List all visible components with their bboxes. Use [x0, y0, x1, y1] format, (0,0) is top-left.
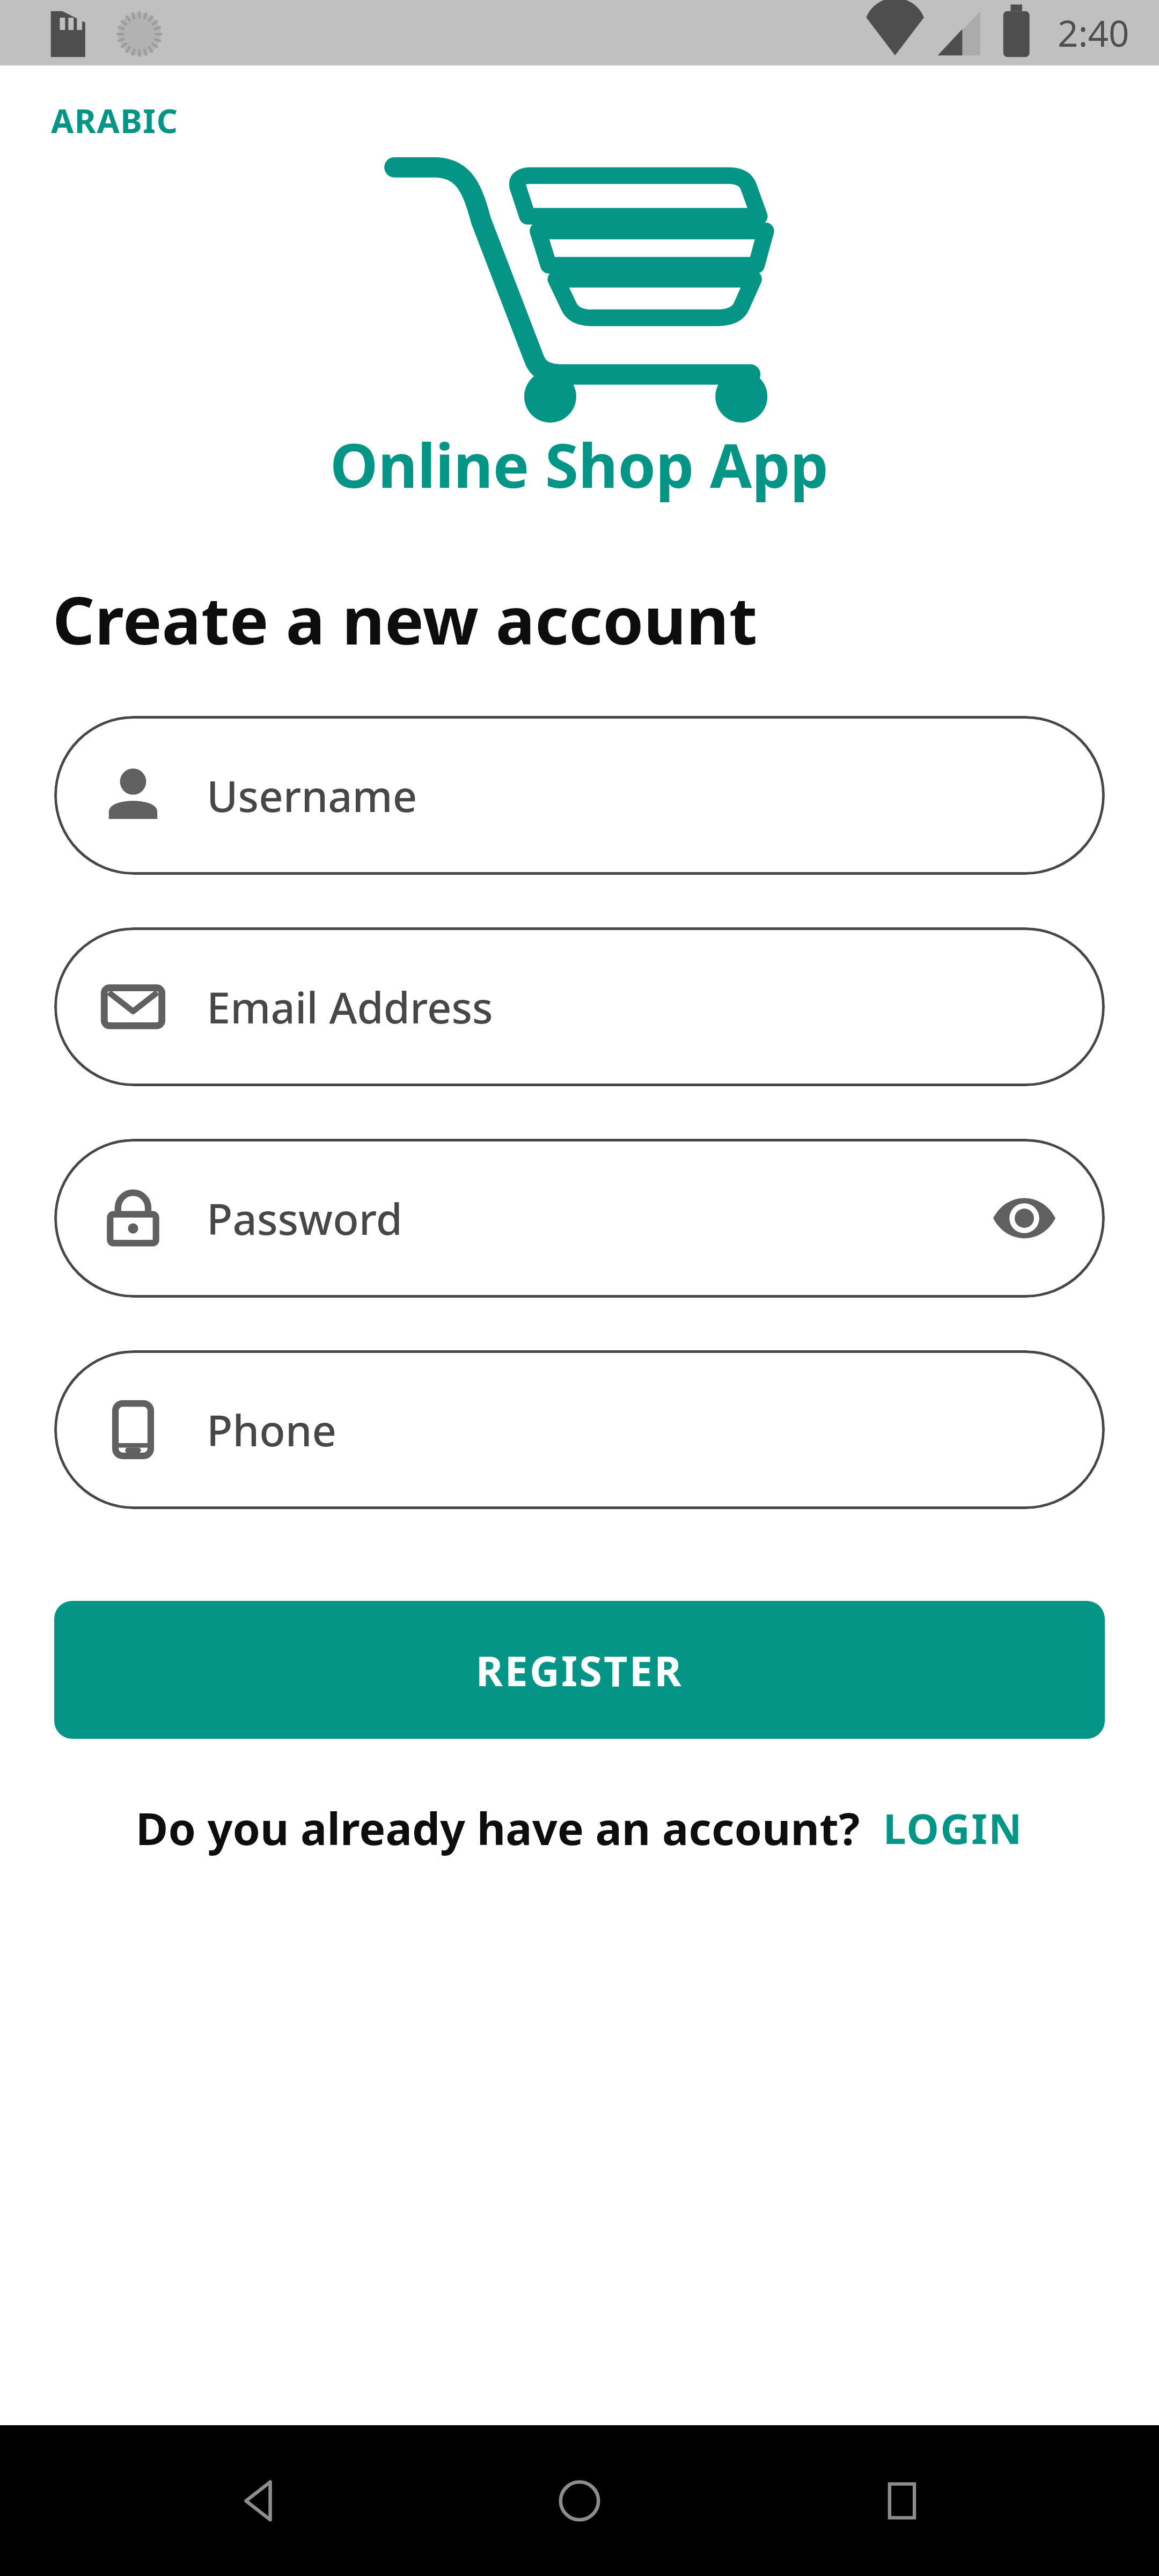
button[interactable]: Password [54, 1139, 1105, 1298]
staticText: Email Address [207, 978, 493, 1036]
button[interactable]: Email Address [54, 927, 1105, 1086]
button[interactable]: Home [514, 2435, 645, 2566]
button[interactable]: Show password [967, 1161, 1082, 1276]
button[interactable]: Recent apps [837, 2435, 967, 2566]
staticText: ARABIC [51, 98, 179, 143]
staticText: LOGIN [883, 1800, 1023, 1856]
button[interactable]: LOGIN [883, 1800, 1023, 1856]
button[interactable]: REGISTER [54, 1601, 1105, 1739]
staticText: Phone [207, 1401, 337, 1459]
staticText: Do you already have an account? [136, 1798, 860, 1858]
button[interactable]: Username [54, 716, 1105, 875]
staticText: Online Shop App [330, 423, 829, 506]
staticText: Password [207, 1189, 402, 1247]
staticText: Username [207, 766, 417, 824]
button[interactable]: Phone [54, 1350, 1105, 1509]
staticText: 2:40 [1058, 8, 1129, 57]
button[interactable]: Back [192, 2435, 322, 2566]
staticText: Create a new account [53, 574, 758, 663]
staticText: REGISTER [476, 1642, 684, 1698]
